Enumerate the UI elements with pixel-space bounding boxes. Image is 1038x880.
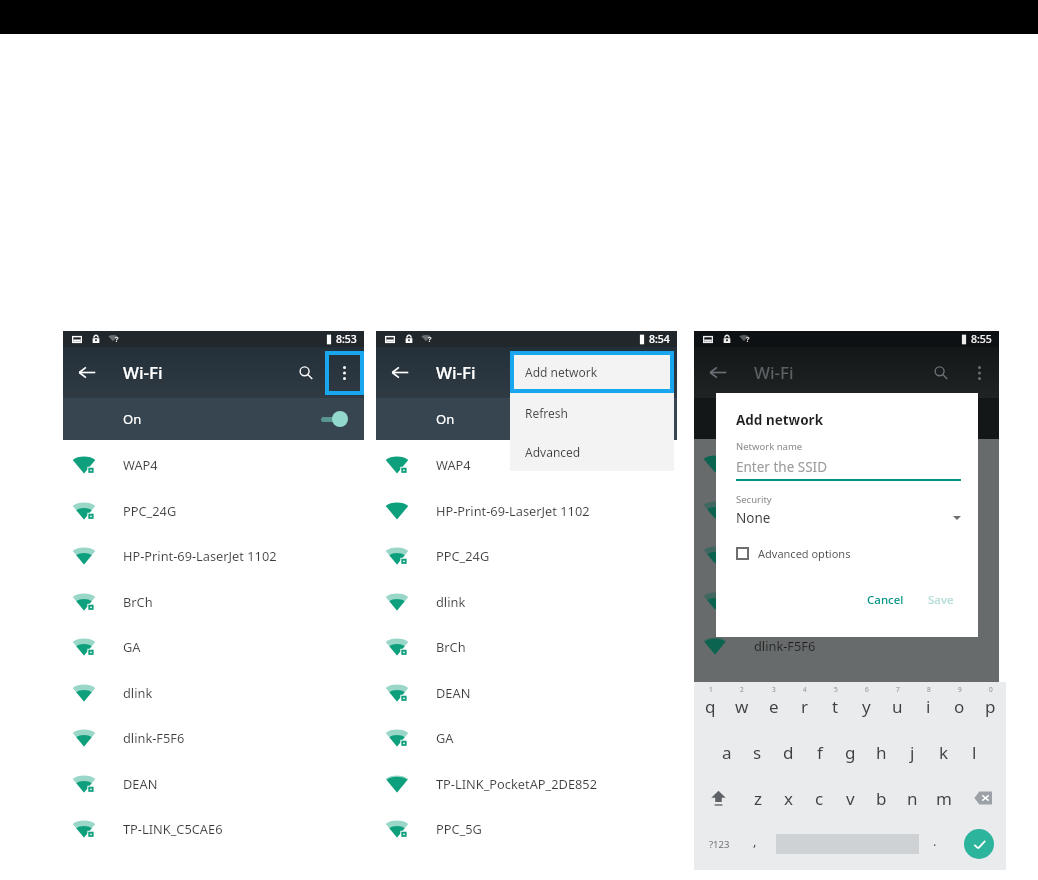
button[interactable]: Search [287,347,325,398]
staticText: 4 [803,685,807,694]
button[interactable]: HP-Print-69-LaserJet 1102 [63,533,364,578]
button[interactable]: BrCh [694,577,999,623]
staticText: s [753,741,762,764]
staticText: b [876,787,887,810]
staticText: y [862,695,871,718]
staticText: WAP4 [754,455,789,472]
button[interactable]: x [773,775,804,821]
button[interactable]: k [928,729,959,775]
button[interactable]: 2 [726,685,758,729]
button[interactable]: h [866,729,897,775]
button[interactable]: More options [325,347,364,398]
staticText: Wi-Fi [436,361,476,384]
staticText: j [910,741,915,764]
staticText: ? [115,335,119,345]
button[interactable]: 9 [944,685,975,729]
staticText: Enter the SSID [736,458,828,476]
staticText: x [784,787,793,810]
button[interactable]: Advanced [510,432,674,471]
button[interactable]: DEAN [63,760,364,806]
button[interactable]: , [744,821,766,867]
button[interactable]: Navigate up [63,347,111,398]
staticText: u [892,695,903,718]
staticText: HP-Print-69-LaserJet 1102 [436,502,590,519]
button[interactable]: Save [921,586,961,614]
button[interactable]: On [63,398,364,440]
button[interactable]: d [773,729,804,775]
button[interactable]: GA [63,624,364,669]
button[interactable]: a [711,729,742,775]
button[interactable]: 6 [851,685,882,729]
staticText: z [754,787,762,810]
staticText: 0 [989,685,993,694]
button[interactable]: BrCh [63,578,364,624]
button[interactable]: . [919,821,951,867]
staticText: 7 [896,685,900,694]
button[interactable]: j [897,729,928,775]
button[interactable]: Navigate up [694,347,742,398]
button[interactable]: Navigate up [376,347,424,398]
button[interactable]: PPC_24G [63,487,364,533]
staticText: Security [736,493,772,506]
staticText: WAP4 [436,456,471,473]
staticText: ?123 [709,838,730,851]
staticText: dlink-F5F6 [123,729,185,746]
staticText: 9 [958,685,962,694]
staticText: GA [123,638,141,655]
button[interactable]: DEAN [376,669,677,715]
button[interactable]: f [804,729,835,775]
button[interactable]: 0 [975,685,1006,729]
button[interactable]: 8 [913,685,944,729]
button[interactable]: 1 [694,685,726,729]
button[interactable]: Backspace [959,775,1006,821]
button[interactable]: TP-LINK_C5CAE6 [63,806,364,851]
button[interactable]: WAP4 [694,441,999,486]
button[interactable]: dlink-F5F6 [694,623,999,668]
button[interactable]: n [897,775,928,821]
staticText: PPC_24G [123,502,177,519]
button[interactable]: dlink [376,578,677,624]
button[interactable]: Search [922,347,960,398]
button[interactable]: BrCh [376,624,677,669]
staticText: 5 [834,685,838,694]
button[interactable]: 4 [789,685,820,729]
staticText: Save [928,592,954,608]
button[interactable]: b [866,775,897,821]
button[interactable]: m [928,775,959,821]
button[interactable]: HP-Print-69-LaserJet 1102 [376,487,677,533]
staticText: Add network [736,411,824,429]
button[interactable]: PPC_24G [376,533,677,578]
button[interactable]: v [835,775,866,821]
button[interactable]: PPC_24G [694,486,999,532]
staticText: TP-LINK_PocketAP_2DE852 [436,775,597,792]
staticText: p [985,695,996,718]
button[interactable]: More options [960,347,999,398]
button[interactable]: 5 [820,685,851,729]
staticText: o [954,695,965,718]
button[interactable]: HP-Print-69-LaserJet 1102 [694,532,999,577]
staticText: 8:55 [971,332,992,346]
button[interactable]: dlink [63,669,364,715]
button[interactable]: ?123 [694,821,744,867]
button[interactable]: dlink-F5F6 [63,715,364,760]
button[interactable]: g [835,729,866,775]
button[interactable]: PPC_5G [376,806,677,851]
button[interactable]: 7 [882,685,913,729]
button[interactable]: 3 [758,685,789,729]
button[interactable]: Refresh [510,393,674,432]
button[interactable]: GA [376,715,677,760]
button[interactable]: TP-LINK_PocketAP_2DE852 [376,760,677,806]
staticText: Wi-Fi [123,361,163,384]
button[interactable]: Advanced options [736,546,851,561]
button[interactable]: Done [951,821,1006,867]
button[interactable]: Cancel [860,586,911,614]
button[interactable]: s [742,729,773,775]
button[interactable]: WAP4 [63,442,364,487]
button[interactable]: WAP4 [376,442,677,487]
button[interactable]: c [804,775,835,821]
button[interactable]: z [742,775,773,821]
button[interactable]: Shift [694,775,742,821]
button[interactable]: Add network [510,351,674,393]
button[interactable]: l [959,729,990,775]
